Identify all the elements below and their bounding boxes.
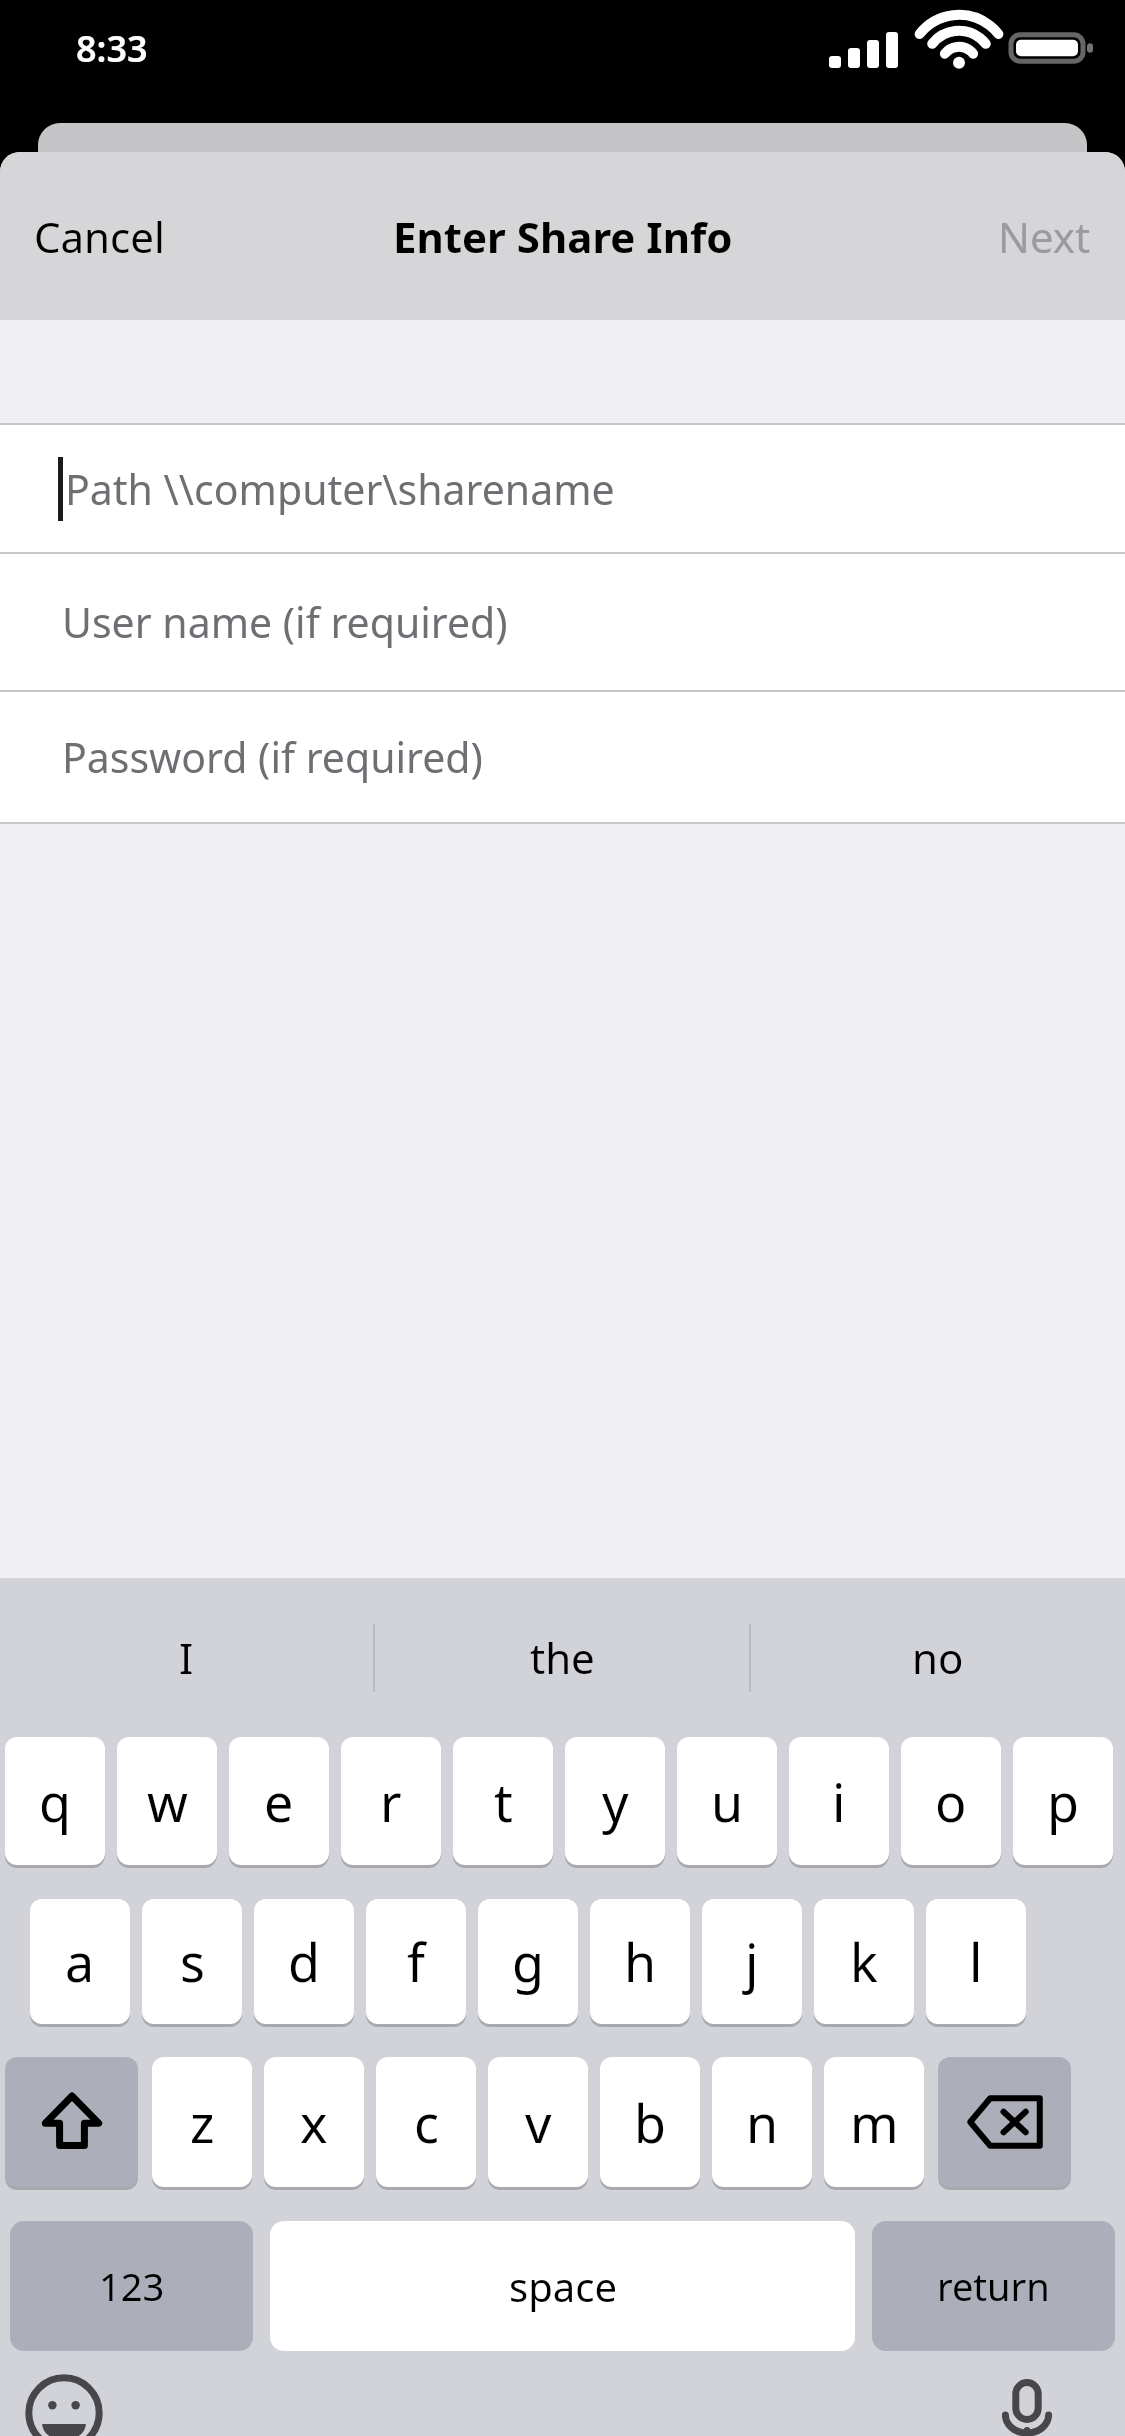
staticText: p [1047,1766,1079,1837]
staticText: q [39,1766,71,1837]
button[interactable]: 123 [10,2221,253,2351]
staticText: e [264,1766,294,1837]
button[interactable]: c [376,2057,476,2187]
button[interactable]: b [600,2057,700,2187]
staticText: n [746,2087,779,2158]
button[interactable]: Cancel [8,188,191,285]
button[interactable]: m [824,2057,924,2187]
button[interactable]: r [341,1737,441,1865]
button[interactable]: s [142,1899,242,2024]
staticText: l [969,1926,983,1997]
button[interactable]: Backspace [938,2057,1071,2187]
button[interactable]: q [5,1737,105,1865]
staticText: h [624,1926,657,1997]
button[interactable]: t [453,1737,553,1865]
staticText: space [509,2259,617,2313]
button[interactable]: Next [972,188,1117,285]
button[interactable]: f [366,1899,466,2024]
staticText: Next [998,208,1091,265]
staticText: d [288,1926,320,1997]
button[interactable]: Path \\computer\sharename [0,425,1125,552]
button[interactable]: a [30,1899,130,2024]
staticText: I [179,1629,194,1686]
button[interactable]: x [264,2057,364,2187]
button[interactable]: the [375,1578,749,1737]
staticText: s [180,1926,205,1997]
button[interactable]: j [702,1899,802,2024]
button[interactable]: h [590,1899,690,2024]
button[interactable]: d [254,1899,354,2024]
staticText: no [912,1629,964,1686]
staticText: w [147,1766,188,1837]
button[interactable]: Dictation [987,2373,1067,2436]
staticText: z [190,2087,215,2158]
button[interactable]: n [712,2057,812,2187]
staticText: c [414,2087,439,2158]
staticText: r [380,1766,402,1837]
staticText: i [832,1766,846,1837]
button[interactable]: i [789,1737,889,1865]
staticText: return [937,2260,1050,2312]
button[interactable]: u [677,1737,777,1865]
staticText: b [634,2087,666,2158]
staticText: 123 [99,2260,165,2312]
staticText: User name (if required) [62,594,508,650]
staticText: 8:33 [76,24,148,73]
staticText: t [494,1766,513,1837]
button[interactable]: p [1013,1737,1113,1865]
button[interactable]: Shift [5,2057,138,2187]
button[interactable]: User name (if required) [0,554,1125,690]
button[interactable]: space [270,2221,855,2351]
button[interactable]: Password (if required) [0,692,1125,822]
staticText: v [525,2087,552,2158]
staticText: g [512,1926,544,1997]
button[interactable]: y [565,1737,665,1865]
staticText: k [850,1926,878,1997]
button[interactable]: z [152,2057,252,2187]
button[interactable]: l [926,1899,1026,2024]
staticText: Cancel [34,208,165,265]
staticText: Enter Share Info [393,208,733,265]
button[interactable]: return [872,2221,1115,2351]
button[interactable]: g [478,1899,578,2024]
staticText: Path \\computer\sharename [65,461,615,517]
staticText: j [745,1926,759,1997]
staticText: a [65,1926,95,1997]
button[interactable]: v [488,2057,588,2187]
button[interactable]: o [901,1737,1001,1865]
staticText: Password (if required) [62,729,483,785]
staticText: the [530,1629,595,1686]
staticText: x [300,2087,328,2158]
staticText: y [602,1766,629,1837]
button[interactable]: I [0,1578,373,1737]
staticText: o [935,1766,967,1837]
staticText: u [711,1766,744,1837]
button[interactable]: w [117,1737,217,1865]
staticText: f [407,1926,425,1997]
button[interactable]: k [814,1899,914,2024]
button[interactable]: e [229,1737,329,1865]
button[interactable]: Emoji [24,2373,104,2436]
staticText: m [850,2087,899,2158]
button[interactable]: no [751,1578,1125,1737]
